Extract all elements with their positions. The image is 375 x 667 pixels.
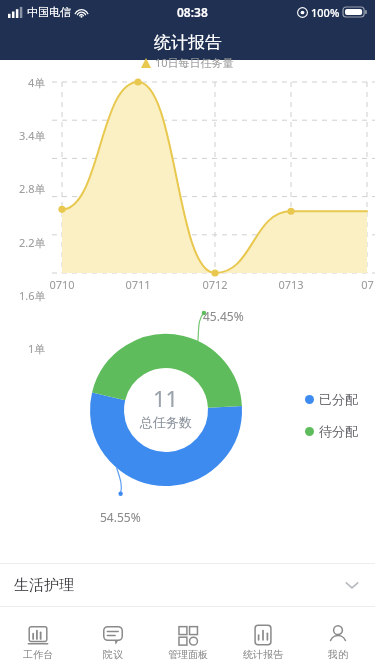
staticText: 已分配 [319, 391, 358, 407]
staticText: 100% [311, 5, 340, 20]
staticText: 中国电信 [27, 5, 71, 19]
button[interactable]: 待分配 [305, 423, 358, 439]
staticText: 0712 [202, 277, 228, 292]
staticText: 4单 [28, 75, 46, 90]
other: Expand [343, 576, 361, 594]
staticText: 我的 [328, 648, 348, 661]
button[interactable]: 工作台 [0, 618, 75, 667]
button[interactable]: 院议 [75, 618, 150, 667]
staticText: 生活护理 [14, 576, 74, 595]
staticText: 统计报告 [243, 648, 283, 661]
staticText: 2.2单 [19, 235, 46, 250]
staticText: 3.4单 [19, 128, 46, 143]
staticText: 0711 [125, 277, 151, 292]
staticText: 0710 [49, 277, 75, 292]
staticText: 0713 [278, 277, 304, 292]
staticText: 2.8单 [19, 181, 46, 196]
staticText: 07 [361, 277, 374, 292]
button[interactable]: 生活护理 [0, 564, 375, 606]
staticText: 08:38 [177, 4, 208, 20]
staticText: 统计报告 [154, 32, 222, 53]
staticText: 1单 [28, 341, 46, 356]
staticText: 待分配 [319, 423, 358, 439]
button[interactable]: 统计报告 [225, 618, 300, 667]
staticText: 院议 [103, 648, 123, 661]
staticText: 总任务数 [140, 414, 192, 430]
staticText: 1.6单 [19, 288, 46, 303]
button[interactable]: 已分配 [305, 391, 358, 407]
button[interactable]: 管理面板 [150, 618, 225, 667]
staticText: 管理面板 [168, 648, 208, 661]
staticText: 10日每日任务量 [155, 55, 234, 70]
staticText: 54.55% [100, 509, 141, 525]
staticText: 11 [153, 383, 179, 413]
staticText: 45.45% [203, 308, 244, 324]
staticText: 工作台 [23, 648, 53, 661]
button[interactable]: 我的 [300, 618, 375, 667]
